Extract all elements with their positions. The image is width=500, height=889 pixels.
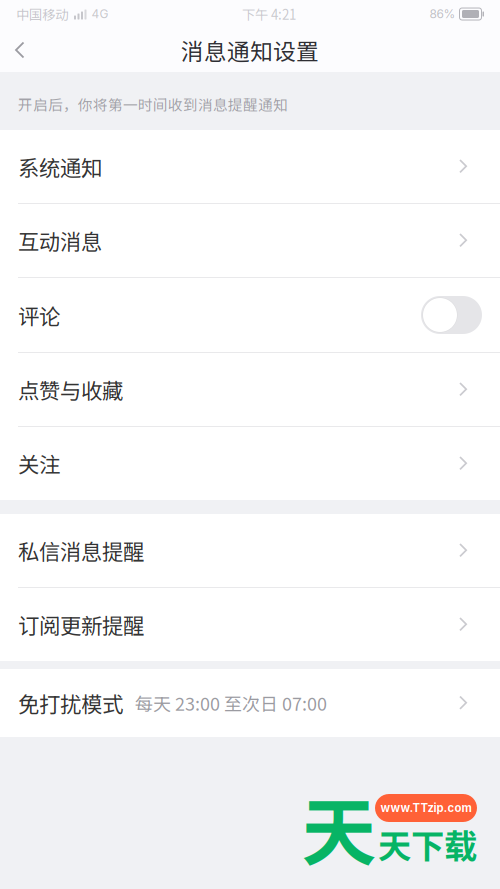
button[interactable]: 互动消息 [0,204,500,278]
staticText: 系统通知 [18,151,102,182]
staticText: 4G [91,7,108,21]
button[interactable]: 关注 [0,427,500,500]
staticText: 评论 [18,300,60,330]
button[interactable]: 系统通知 [0,130,500,204]
staticText: 下午 4:21 [242,4,296,24]
button[interactable]: 免打扰模式 [0,669,500,737]
button[interactable]: 返回 [0,28,40,72]
staticText: 天下载 [378,820,477,868]
staticText: 每天 23:00 至次日 07:00 [135,690,327,716]
staticText: 订阅更新提醒 [18,609,144,640]
staticText: 开启后，你将第一时间收到消息提醒通知 [18,93,288,115]
staticText: 中国移动 [16,4,68,24]
staticText: 天 [301,773,376,881]
button[interactable]: 私信消息提醒 [0,514,500,588]
staticText: 私信消息提醒 [18,535,144,566]
staticText: www.TTzip.com [380,801,471,815]
button[interactable]: 点赞与收藏 [0,353,500,427]
button[interactable]: 订阅更新提醒 [0,588,500,661]
staticText: 免打扰模式 [18,688,123,718]
staticText: 关注 [18,448,60,479]
button[interactable]: 评论 [0,278,500,353]
staticText: 点赞与收藏 [18,374,123,405]
staticText: 消息通知设置 [181,34,319,66]
staticText: 互动消息 [18,225,102,256]
staticText: 86% [429,7,455,21]
